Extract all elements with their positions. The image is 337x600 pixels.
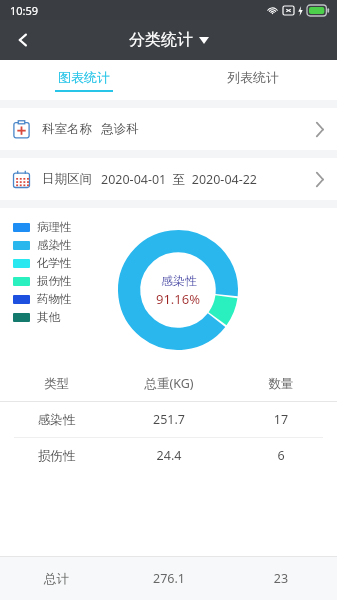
staticText: 日期区间 [42, 171, 92, 187]
staticText: 化学性 [37, 256, 72, 270]
staticText: 23 [225, 570, 337, 587]
staticText: 2020-04-01 至 2020-04-22 [101, 171, 258, 188]
staticText: 急诊科 [101, 121, 139, 137]
staticText: 276.1 [113, 570, 225, 587]
staticText: 数量 [225, 376, 337, 392]
staticText: 药物性 [37, 292, 72, 306]
button[interactable]: 图表统计 [0, 60, 168, 100]
staticText: 感染性 [0, 412, 113, 428]
staticText: 列表统计 [227, 69, 279, 85]
staticText: 类型 [0, 376, 113, 392]
staticText: 图表统计 [58, 69, 110, 85]
staticText: 10:59 [10, 3, 39, 18]
staticText: 损伤性 [0, 448, 113, 464]
staticText: 17 [225, 411, 337, 428]
staticText: 24.4 [113, 447, 225, 464]
staticText: 科室名称 [42, 121, 92, 137]
staticText: 感染性 [37, 238, 72, 252]
button[interactable]: 科室名称 [0, 108, 337, 150]
staticText: 感染性 [161, 273, 197, 288]
staticText: 损伤性 [37, 274, 72, 288]
staticText: 251.7 [113, 411, 225, 428]
staticText: 分类统计 [129, 30, 193, 50]
staticText: 6 [225, 447, 337, 464]
button[interactable]: Back [0, 20, 46, 60]
staticText: 总计 [0, 571, 113, 587]
staticText: 其他 [37, 310, 60, 324]
button[interactable]: 列表统计 [168, 60, 337, 100]
staticText: 91.16% [156, 290, 201, 308]
button[interactable]: 分类统计 [129, 30, 209, 50]
button[interactable]: 日期区间 [0, 158, 337, 200]
staticText: 病理性 [37, 220, 72, 234]
staticText: 总重(KG) [113, 375, 225, 392]
